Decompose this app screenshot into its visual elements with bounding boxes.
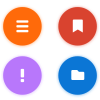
button[interactable]: Alert [3, 56, 42, 95]
button[interactable]: Menu [3, 7, 42, 46]
button[interactable]: Bookmark [58, 7, 97, 46]
button[interactable]: Files [58, 56, 97, 95]
